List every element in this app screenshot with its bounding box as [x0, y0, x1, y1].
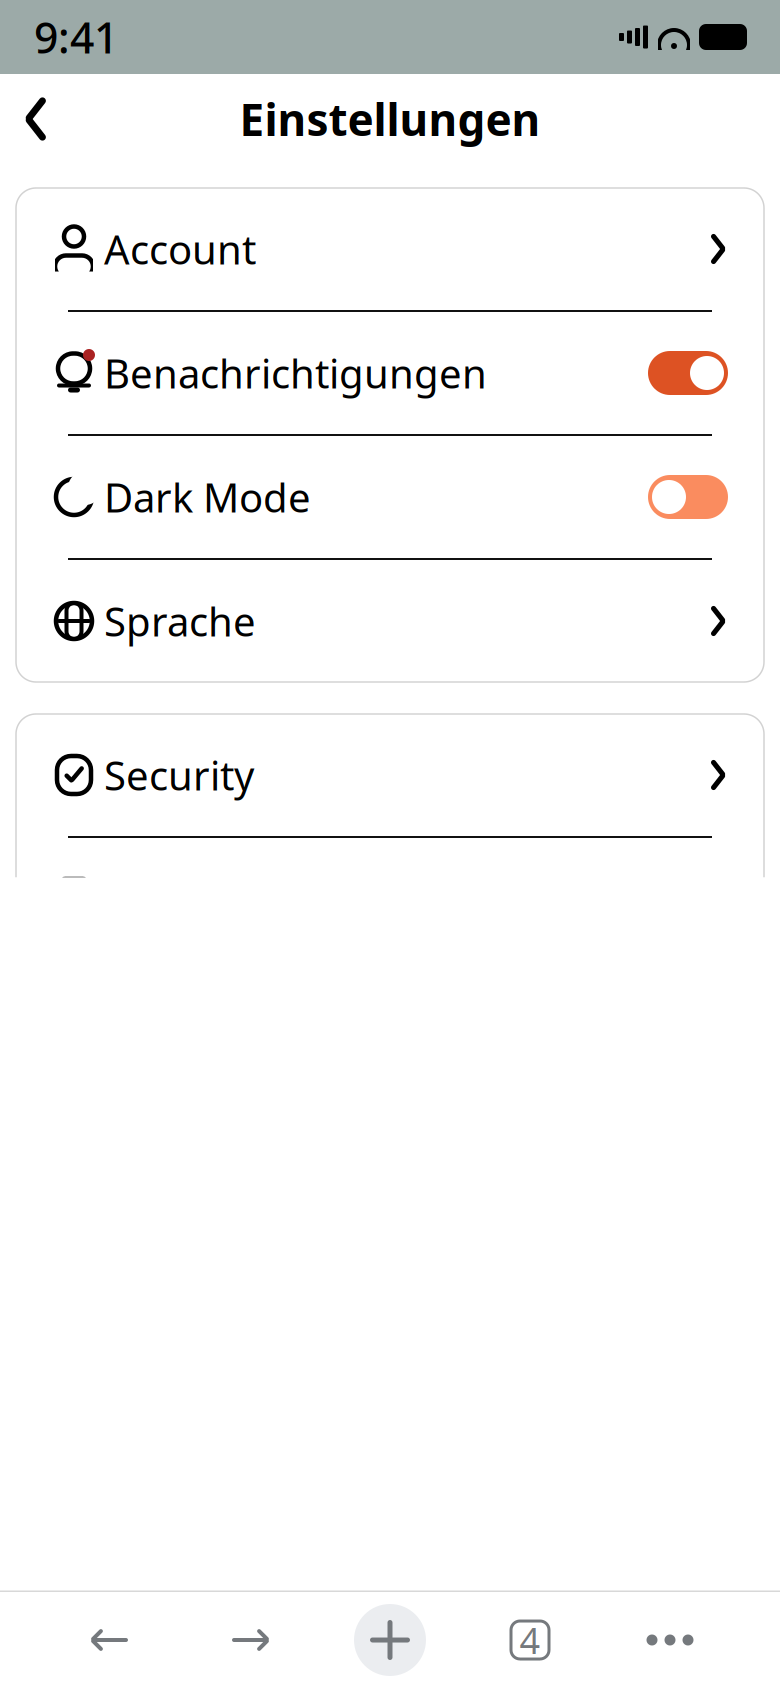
staticText: Dark Mode: [104, 470, 311, 523]
staticText: Account: [104, 222, 256, 275]
button[interactable]: Back: [0, 84, 72, 154]
staticText: Einstellungen: [239, 90, 540, 148]
button[interactable]: Tabs: [460, 1592, 600, 1688]
button[interactable]: Sprache: [16, 560, 764, 682]
button[interactable]: Dark Mode: [16, 436, 764, 558]
button[interactable]: Benachrichtigungen: [16, 312, 764, 434]
button[interactable]: Security: [16, 714, 764, 836]
button[interactable]: More: [600, 1592, 740, 1688]
staticText: 9:41: [34, 9, 118, 65]
staticText: 4: [519, 1616, 540, 1664]
staticText: Benachrichtigungen: [104, 346, 487, 399]
button[interactable]: New Tab: [320, 1592, 460, 1688]
staticText: Security: [104, 748, 254, 801]
button[interactable]: Back: [40, 1592, 180, 1688]
button[interactable]: Forward: [180, 1592, 320, 1688]
staticText: Sprache: [104, 594, 256, 647]
button[interactable]: Account: [16, 188, 764, 310]
